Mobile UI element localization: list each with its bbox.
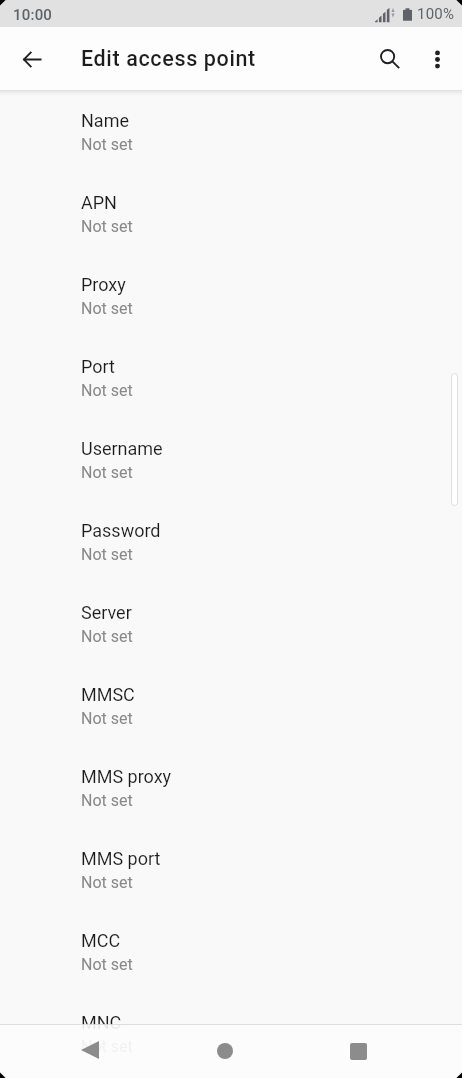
button[interactable]: Port xyxy=(0,336,462,418)
staticText: APN xyxy=(81,192,117,213)
staticText: MMS port xyxy=(81,848,161,869)
button[interactable]: MMSC xyxy=(0,664,462,746)
staticText: 10:00 xyxy=(13,6,53,24)
button[interactable]: Username xyxy=(0,418,462,500)
staticText: Not set xyxy=(81,135,133,154)
staticText: MNC xyxy=(81,1012,122,1033)
staticText: Not set xyxy=(81,217,133,236)
staticText: 100% xyxy=(417,5,455,23)
button[interactable]: Home xyxy=(202,1028,248,1074)
staticText: Proxy xyxy=(81,274,126,295)
staticText: Not set xyxy=(81,955,133,974)
button[interactable]: Name xyxy=(0,90,462,172)
staticText: Server xyxy=(81,602,132,623)
staticText: Not set xyxy=(81,627,133,646)
staticText: Not set xyxy=(81,381,133,400)
button[interactable]: Search xyxy=(366,35,414,83)
button[interactable]: Navigate up xyxy=(8,35,56,83)
button[interactable]: MMS port xyxy=(0,828,462,910)
button[interactable]: Recent apps xyxy=(335,1028,381,1074)
staticText: Not set xyxy=(81,709,133,728)
staticText: Not set xyxy=(81,545,133,564)
button[interactable]: Proxy xyxy=(0,254,462,336)
staticText: Password xyxy=(81,520,161,541)
staticText: Not set xyxy=(81,463,133,482)
button[interactable]: APN xyxy=(0,172,462,254)
staticText: MMSC xyxy=(81,684,135,705)
staticText: Not set xyxy=(81,1037,133,1056)
button[interactable]: MNC xyxy=(0,992,462,1074)
staticText: Port xyxy=(81,356,115,377)
staticText: Name xyxy=(81,110,129,131)
staticText: Username xyxy=(81,438,163,459)
staticText: Not set xyxy=(81,873,133,892)
staticText: MCC xyxy=(81,930,121,951)
staticText: MMS proxy xyxy=(81,766,172,787)
button[interactable]: MCC xyxy=(0,910,462,992)
button[interactable]: MMS proxy xyxy=(0,746,462,828)
staticText: Not set xyxy=(81,791,133,810)
staticText: Edit access point xyxy=(81,46,256,71)
staticText: Not set xyxy=(81,299,133,318)
button[interactable]: More options xyxy=(413,35,461,83)
button[interactable]: Back xyxy=(67,1028,113,1074)
button[interactable]: Password xyxy=(0,500,462,582)
button[interactable]: Server xyxy=(0,582,462,664)
